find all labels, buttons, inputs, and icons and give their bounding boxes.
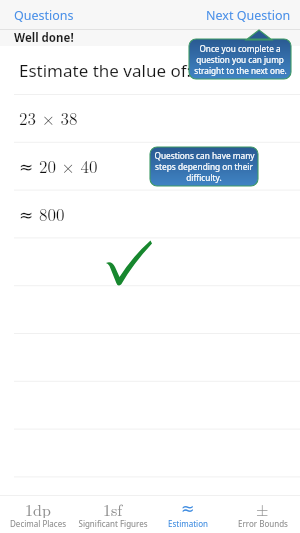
staticText: steps depending on their (155, 161, 253, 172)
button[interactable]: 1dp (0, 496, 75, 533)
staticText: Estimate the value of: (19, 59, 192, 82)
button[interactable]: ≈ 800 (0, 190, 300, 238)
staticText: Questions (14, 7, 74, 24)
button[interactable]: 1sf (75, 496, 150, 533)
staticText: 1dp (25, 498, 51, 518)
staticText: ≈ 800 (19, 202, 65, 226)
button[interactable]: ± (225, 496, 300, 533)
staticText: Well done! (14, 30, 74, 46)
button[interactable]: Next Question (196, 1, 300, 30)
staticText: 23 × 38 (19, 106, 78, 130)
staticText: difficulty. (186, 172, 222, 183)
button[interactable]: Estimate the value of: (0, 46, 300, 94)
button[interactable]: Questions (0, 1, 84, 30)
staticText: Next Question (206, 7, 291, 24)
staticText: 1sf (103, 498, 123, 518)
staticText: Significant Figures (78, 518, 148, 529)
staticText: ≈ 20 × 40 (19, 154, 98, 178)
button[interactable]: 23 × 38 (0, 94, 300, 142)
button[interactable]: ≈ (150, 496, 225, 533)
staticText: Decimal Places (10, 518, 66, 529)
staticText: ≈ (181, 499, 195, 518)
staticText: Questions can have many (154, 150, 255, 161)
staticText: straight to the next one. (194, 65, 287, 76)
button[interactable]: ≈ 20 × 40 (0, 142, 300, 190)
staticText: Estimation (168, 518, 208, 529)
button[interactable]: Once you complete a (189, 39, 291, 79)
staticText: Error Bounds (238, 518, 288, 529)
button[interactable]: Questions can have many (150, 147, 258, 186)
staticText: ± (256, 498, 269, 518)
staticText: Once you complete a (199, 43, 281, 54)
staticText: question you can jump (196, 54, 284, 65)
